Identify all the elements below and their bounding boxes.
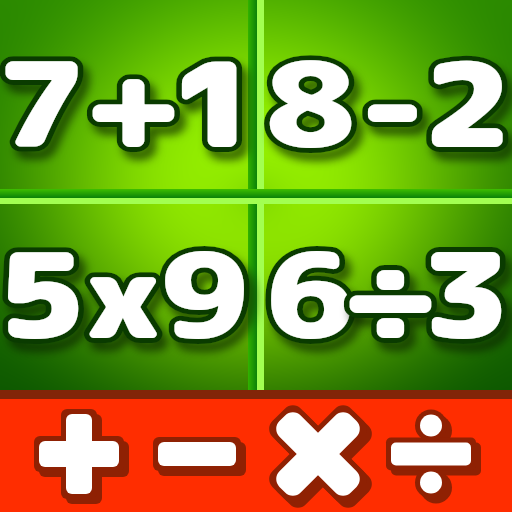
button[interactable]: Math games for kids <box>0 0 512 512</box>
